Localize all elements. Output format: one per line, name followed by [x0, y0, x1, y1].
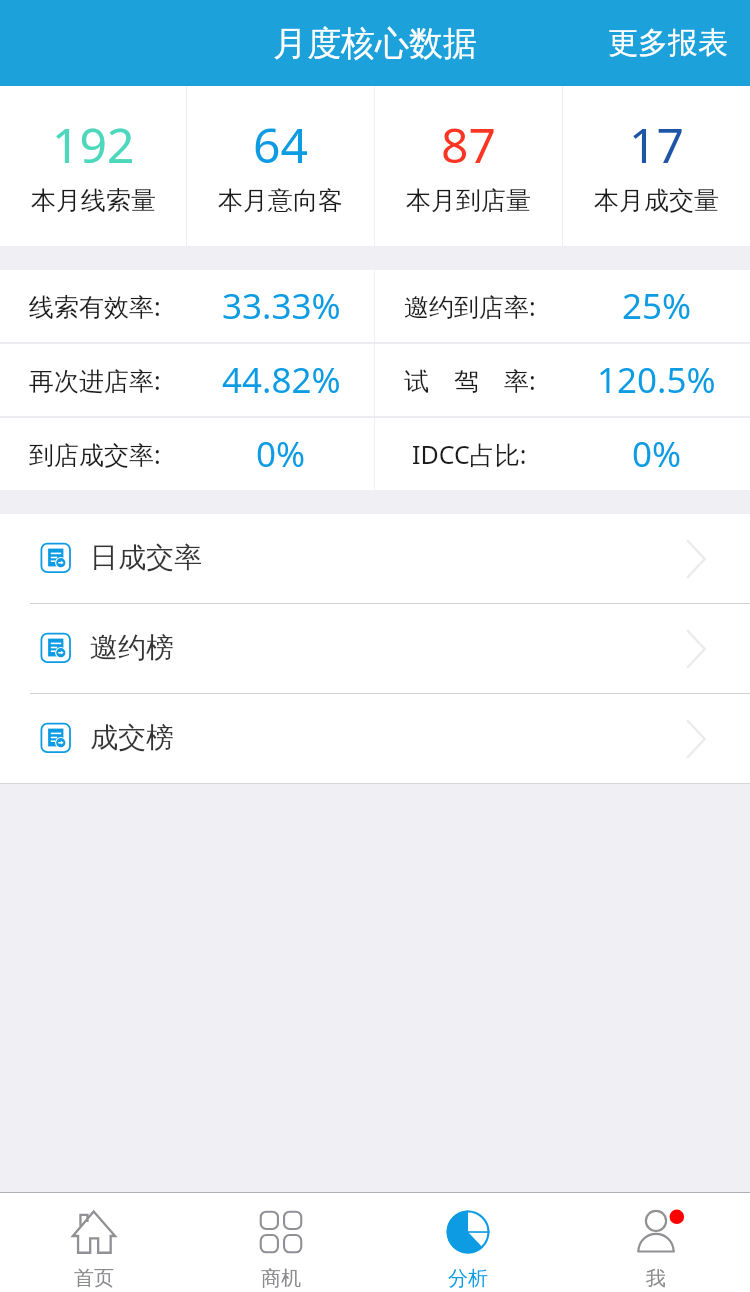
staticText: 试 驾 率:	[404, 363, 536, 397]
button[interactable]: 17	[563, 86, 750, 246]
button[interactable]: 试 驾 率:	[375, 344, 750, 416]
staticText: 120.5%	[597, 356, 716, 404]
staticText: 64	[253, 112, 308, 177]
staticText: 25%	[622, 282, 692, 330]
button[interactable]: 到店成交率:	[0, 418, 374, 490]
button[interactable]: 更多报表	[586, 0, 750, 86]
staticText: 商机	[261, 1266, 301, 1291]
staticText: 更多报表	[608, 24, 728, 62]
staticText: 192	[52, 112, 135, 177]
button[interactable]: 192	[0, 86, 186, 246]
button[interactable]: 分析	[374, 1193, 562, 1292]
staticText: 本月意向客	[218, 185, 343, 216]
staticText: 成交榜	[90, 720, 174, 755]
staticText: 首页	[74, 1266, 114, 1291]
button[interactable]: 64	[187, 86, 374, 246]
button[interactable]: 邀约榜	[0, 604, 750, 693]
staticText: 邀约榜	[90, 630, 174, 665]
staticText: 17	[629, 112, 684, 177]
staticText: 再次进店率:	[29, 363, 161, 397]
button[interactable]: 成交榜	[0, 694, 750, 783]
other: 分析	[445, 1209, 491, 1255]
staticText: 本月成交量	[594, 185, 719, 216]
staticText: 本月到店量	[406, 185, 531, 216]
staticText: 日成交率	[90, 540, 202, 575]
staticText: 月度核心数据	[273, 22, 477, 65]
staticText: 邀约到店率:	[404, 289, 536, 323]
staticText: 33.33%	[222, 282, 341, 330]
staticText: IDCC占比:	[412, 437, 527, 471]
staticText: 87	[441, 112, 496, 177]
button[interactable]: 再次进店率:	[0, 344, 374, 416]
button[interactable]: IDCC占比:	[375, 418, 750, 490]
staticText: 线索有效率:	[29, 289, 161, 323]
button[interactable]: 我	[562, 1193, 750, 1292]
button[interactable]: 日成交率	[0, 514, 750, 603]
staticText: 到店成交率:	[29, 437, 161, 471]
staticText: 0%	[256, 430, 306, 478]
staticText: 44.82%	[222, 356, 341, 404]
staticText: 分析	[448, 1266, 488, 1291]
staticText: 我	[646, 1266, 666, 1291]
other: 我	[633, 1209, 679, 1255]
button[interactable]: 87	[375, 86, 562, 246]
button[interactable]: 商机	[187, 1193, 374, 1292]
staticText: 本月线索量	[31, 185, 156, 216]
other: 首页	[71, 1209, 117, 1255]
button[interactable]: 线索有效率:	[0, 270, 374, 342]
other: 商机	[258, 1209, 304, 1255]
button[interactable]: 首页	[0, 1193, 187, 1292]
staticText: 0%	[632, 430, 682, 478]
button[interactable]: 邀约到店率:	[375, 270, 750, 342]
